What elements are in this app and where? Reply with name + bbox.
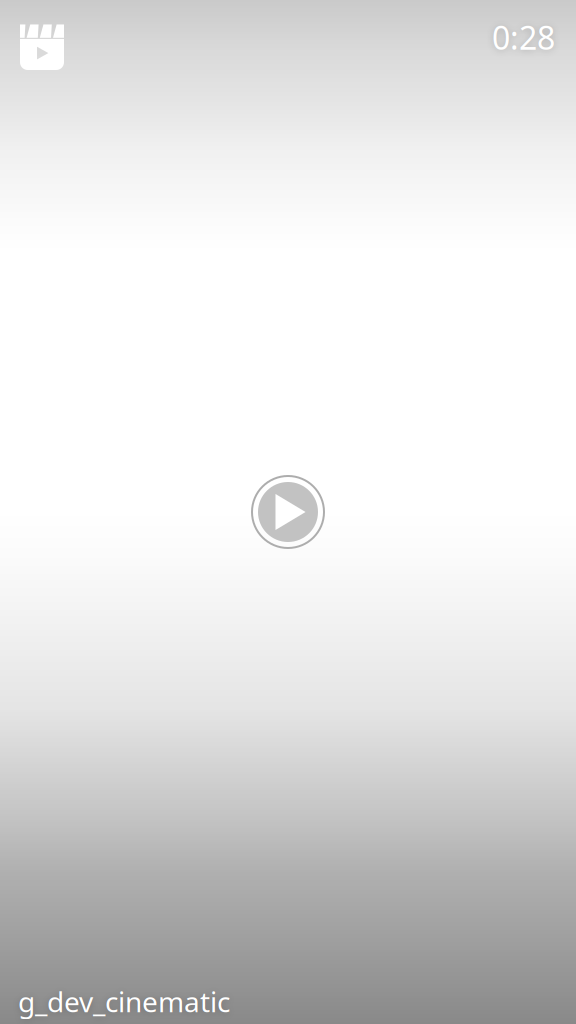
button[interactable]: g_dev_cinematic	[18, 983, 230, 1020]
staticText: g_dev_cinematic	[18, 983, 230, 1020]
staticText: 0:28	[492, 16, 555, 58]
button[interactable]: Play	[248, 472, 328, 552]
button[interactable]: Reels	[0, 0, 64, 70]
